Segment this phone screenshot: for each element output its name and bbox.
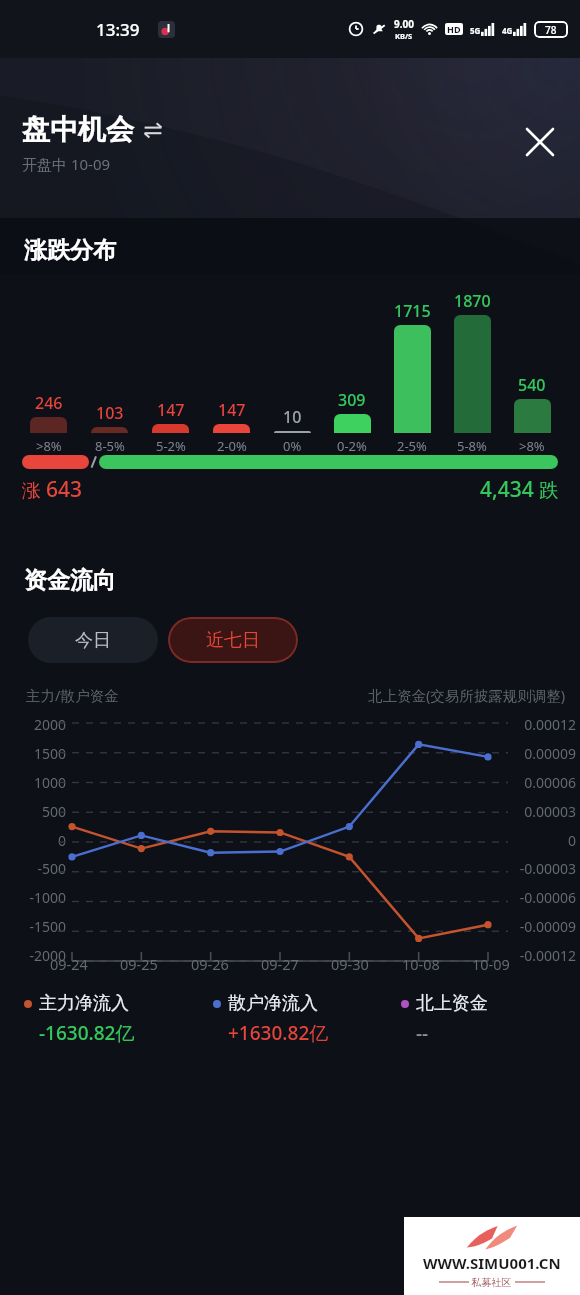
staticText: 主力净流入 — [39, 992, 129, 1015]
staticText: 13:39 — [96, 18, 140, 41]
staticText: 主力/散户资金 — [26, 685, 119, 705]
staticText: 近七日 — [206, 629, 260, 652]
staticText: 涨跌分布 — [24, 236, 116, 265]
staticText: 0 — [567, 831, 576, 850]
staticText: >8% — [36, 437, 62, 455]
staticText: 1000 — [33, 773, 66, 792]
staticText: 10-08 — [402, 954, 440, 974]
staticText: KB/S — [395, 31, 413, 41]
staticText: 开盘中 10-09 — [22, 154, 111, 174]
staticText: 1500 — [33, 744, 66, 763]
staticText: 246 — [35, 392, 63, 414]
staticText: 8-5% — [95, 437, 125, 455]
staticText: 643 — [46, 475, 83, 504]
staticText: 2-5% — [397, 437, 427, 455]
staticText: 盘中机会 — [22, 112, 134, 147]
staticText: -0.00003 — [519, 859, 576, 878]
staticText: 0% — [283, 437, 302, 455]
staticText: 5-2% — [156, 437, 186, 455]
staticText: >8% — [519, 437, 545, 455]
staticText: 0.00012 — [524, 715, 576, 734]
staticText: -500 — [37, 859, 66, 878]
staticText: 09-25 — [120, 954, 158, 974]
staticText: -0.00012 — [519, 946, 576, 965]
button[interactable]: Close — [514, 116, 566, 168]
button[interactable]: 散户净流入 — [213, 992, 401, 1046]
staticText: 78 — [545, 23, 557, 37]
staticText: HD — [447, 23, 461, 35]
staticText: 1870 — [454, 290, 491, 312]
button[interactable]: 北上资金 — [401, 992, 562, 1046]
staticText: 309 — [338, 389, 366, 411]
staticText: WWW.SIMU001.CN — [423, 1253, 561, 1273]
staticText: 10 — [283, 406, 302, 428]
staticText: 09-24 — [50, 954, 88, 974]
staticText: -1000 — [29, 888, 66, 907]
staticText: 5-8% — [457, 437, 487, 455]
staticText: 9.00 — [394, 17, 414, 31]
staticText: 0.00009 — [524, 744, 576, 763]
staticText: -2000 — [29, 946, 66, 965]
staticText: -0.00009 — [519, 917, 576, 936]
staticText: 0.00006 — [524, 773, 576, 792]
staticText: 0 — [57, 831, 66, 850]
staticText: 4G — [502, 25, 513, 36]
staticText: -1630.82亿 — [39, 1020, 135, 1046]
button[interactable]: 主力净流入 — [24, 992, 213, 1046]
staticText: 500 — [41, 802, 66, 821]
staticText: 0-2% — [337, 437, 367, 455]
staticText: 103 — [96, 402, 124, 424]
staticText: 北上资金(交易所披露规则调整) — [368, 685, 566, 705]
staticText: 北上资金 — [416, 992, 488, 1015]
other: Switch — [143, 120, 163, 140]
staticText: 4,434 — [480, 475, 534, 504]
staticText: 0.00003 — [524, 802, 576, 821]
staticText: 5G — [470, 25, 481, 36]
staticText: 2000 — [33, 715, 66, 734]
staticText: 跌 — [534, 477, 558, 503]
staticText: 1715 — [394, 300, 431, 322]
button[interactable]: 近七日 — [168, 617, 298, 663]
staticText: 2-0% — [217, 437, 247, 455]
button[interactable]: 今日 — [28, 617, 158, 663]
staticText: 540 — [518, 374, 546, 396]
staticText: -1500 — [29, 917, 66, 936]
staticText: 147 — [218, 399, 246, 421]
staticText: 09-26 — [191, 954, 229, 974]
staticText: -- — [416, 1020, 429, 1046]
staticText: 散户净流入 — [228, 992, 318, 1015]
staticText: 今日 — [75, 629, 111, 652]
staticText: 涨 — [22, 477, 46, 503]
staticText: 私募社区 — [469, 1275, 515, 1289]
staticText: 10-09 — [472, 954, 510, 974]
staticText: 资金流向 — [24, 566, 116, 595]
staticText: -0.00006 — [519, 888, 576, 907]
staticText: +1630.82亿 — [228, 1020, 329, 1046]
staticText: 09-30 — [331, 954, 369, 974]
staticText: 09-27 — [261, 954, 299, 974]
staticText: 147 — [157, 399, 185, 421]
